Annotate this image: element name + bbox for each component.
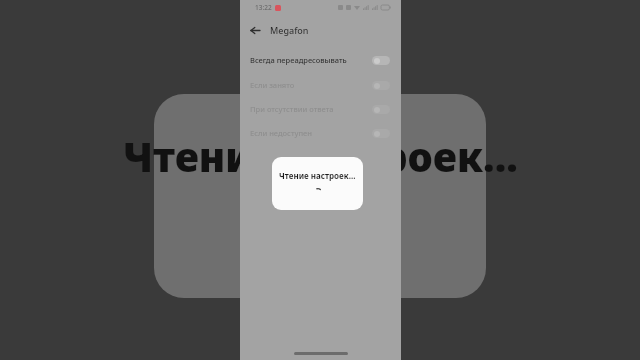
staticText: Всегда переадресовывать [250,55,347,65]
staticText: При отсутствии ответа [250,104,334,114]
button[interactable]: Back [247,22,263,38]
button[interactable]: Если недоступен [240,125,401,141]
button[interactable]: При отсутствии ответа [240,101,401,117]
staticText: Чтение настроек... [123,129,518,173]
button[interactable]: Если занято [240,77,401,93]
staticText: Если занято [250,80,295,90]
staticText: 13:22 [255,3,272,12]
button[interactable]: Back [240,19,401,41]
button[interactable]: Всегда переадресовывать [372,56,390,65]
staticText: Megafon [270,24,309,36]
staticText: Если недоступен [250,128,312,138]
button[interactable]: При отсутствии ответа [372,105,390,114]
button[interactable]: Если недоступен [372,129,390,138]
staticText: Чтение настроек... [279,170,356,181]
button[interactable]: Если занято [372,81,390,90]
button[interactable]: Всегда переадресовывать [240,52,401,68]
